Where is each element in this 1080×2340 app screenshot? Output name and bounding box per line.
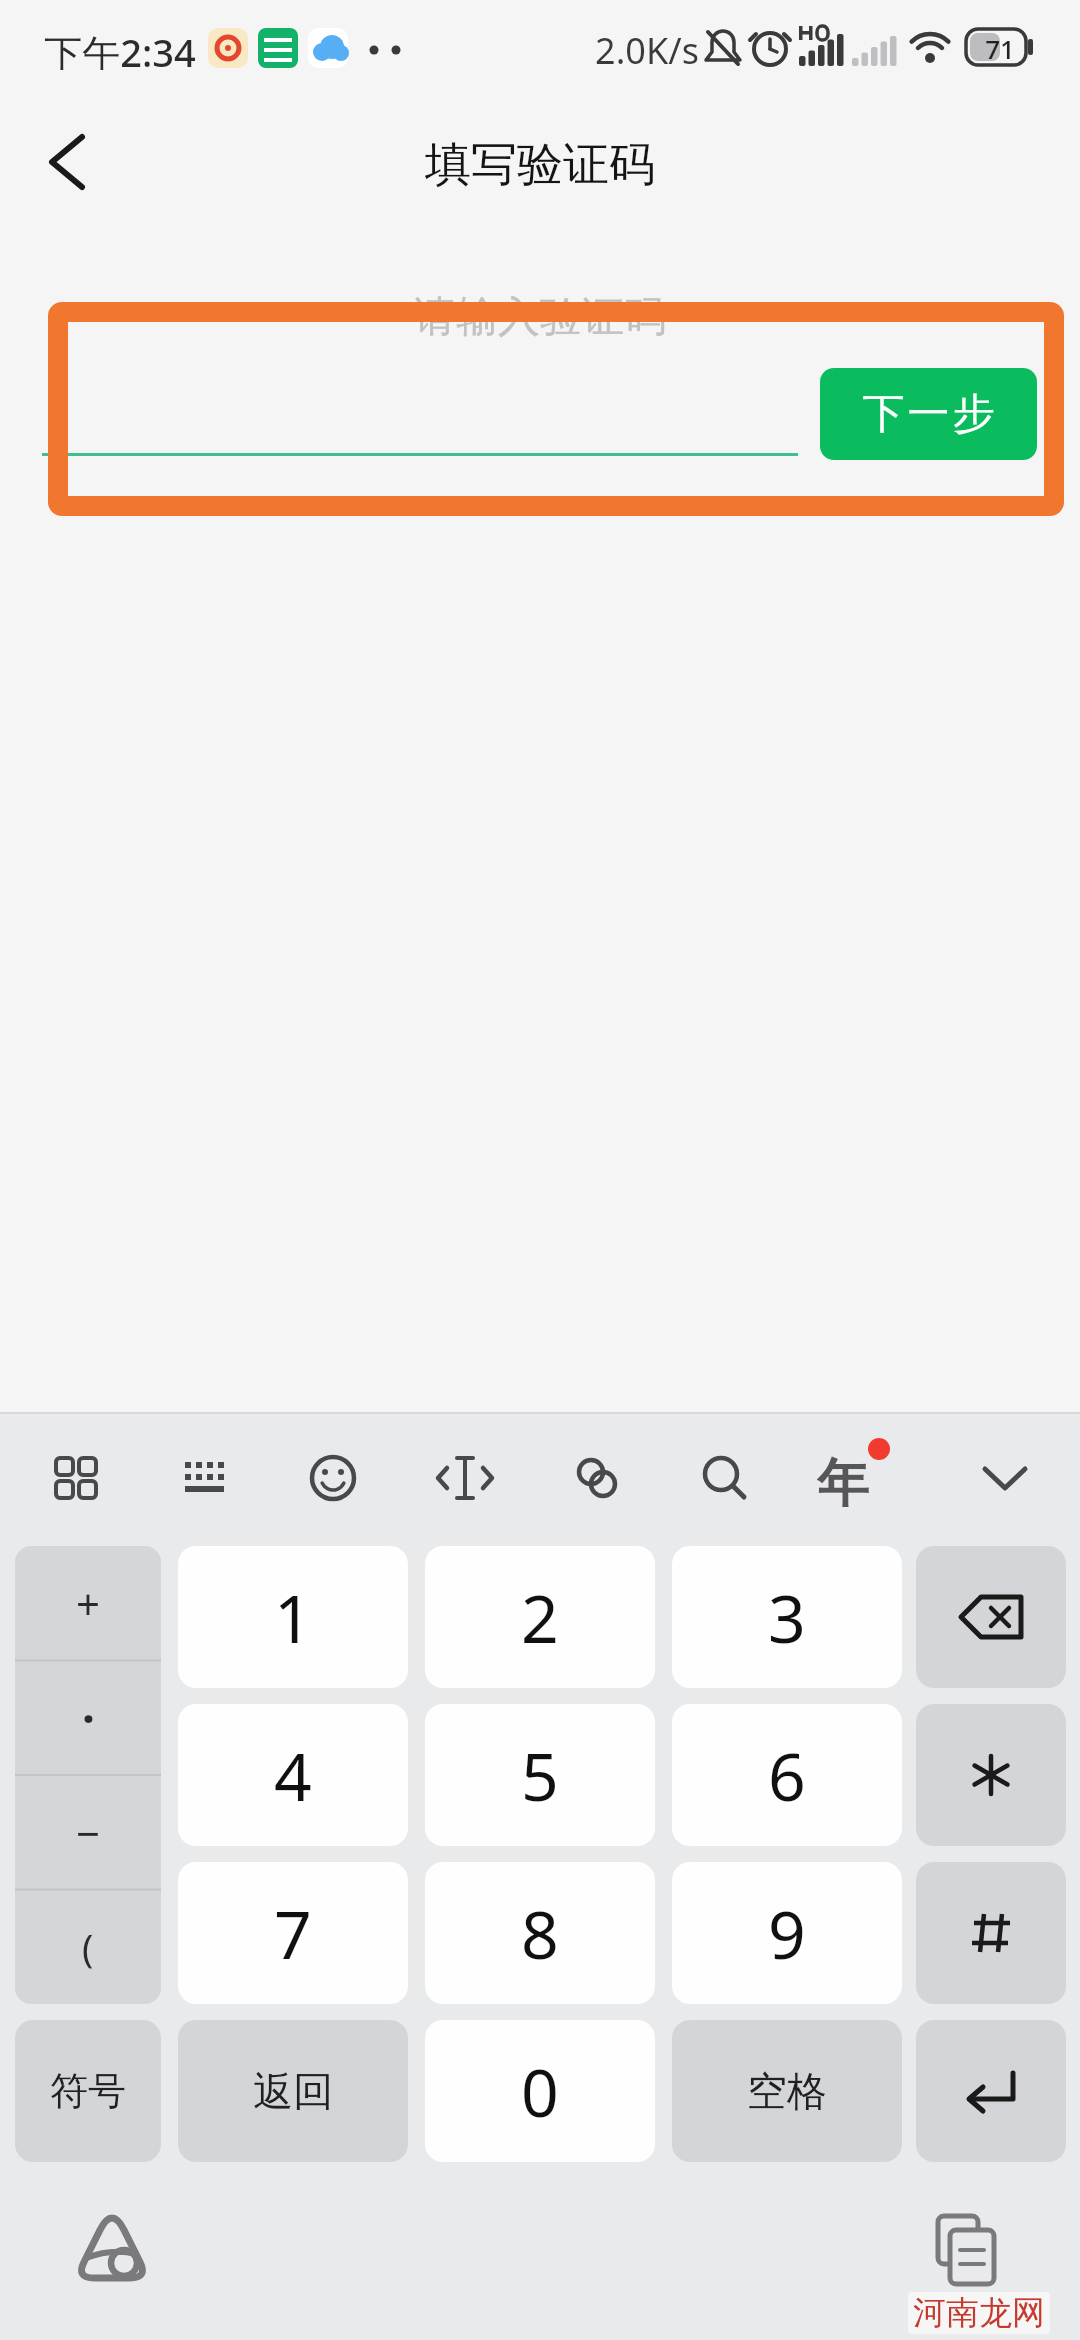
staticText: 2.0K/s xyxy=(595,26,699,70)
staticText: 7 xyxy=(274,1888,312,1978)
button[interactable]: 空格 xyxy=(672,2020,902,2162)
staticText: 空格 xyxy=(747,2066,827,2116)
button[interactable]: 7 xyxy=(178,1862,408,2004)
staticText: − xyxy=(76,1804,101,1861)
button[interactable] xyxy=(916,2020,1066,2162)
staticText: 年 xyxy=(817,1451,869,1507)
staticText: 2 xyxy=(521,1572,559,1662)
staticText: ( xyxy=(82,1921,94,1973)
button[interactable] xyxy=(916,1862,1066,2004)
staticText: 71 xyxy=(985,31,1015,63)
staticText: 请输入验证码 xyxy=(414,291,666,343)
button[interactable]: 2 xyxy=(425,1546,655,1688)
button[interactable] xyxy=(916,1546,1066,1688)
staticText: 填写验证码 xyxy=(425,136,655,192)
button[interactable]: 4 xyxy=(178,1704,408,1846)
staticText: 0 xyxy=(521,2046,559,2136)
staticText: 返回 xyxy=(253,2066,333,2116)
staticText: 下一步 xyxy=(861,388,996,441)
button[interactable]: 9 xyxy=(672,1862,902,2004)
button[interactable] xyxy=(15,1546,161,2004)
button[interactable]: 1 xyxy=(178,1546,408,1688)
button[interactable]: 5 xyxy=(425,1704,655,1846)
staticText: 下午2:34 xyxy=(44,26,196,70)
button[interactable]: 6 xyxy=(672,1704,902,1846)
staticText: 符号 xyxy=(50,2067,126,2115)
button[interactable]: 符号 xyxy=(15,2020,161,2162)
button[interactable]: 8 xyxy=(425,1862,655,2004)
staticText: 6 xyxy=(768,1730,806,1820)
button[interactable]: 3 xyxy=(672,1546,902,1688)
staticText: + xyxy=(76,1575,101,1632)
button[interactable]: · xyxy=(15,1661,161,1775)
button[interactable]: − xyxy=(15,1775,161,1889)
staticText: · xyxy=(82,1687,95,1750)
staticText: 河南龙网 xyxy=(913,2292,1045,2334)
staticText: 8 xyxy=(521,1888,559,1978)
staticText: 4 xyxy=(274,1730,312,1820)
staticText: 5 xyxy=(521,1730,559,1820)
button[interactable] xyxy=(916,1704,1066,1846)
button[interactable] xyxy=(30,130,100,200)
button[interactable]: 返回 xyxy=(178,2020,408,2162)
staticText: 1 xyxy=(274,1572,312,1662)
staticText: 3 xyxy=(768,1572,806,1662)
button[interactable]: 下一步 xyxy=(820,368,1037,460)
button[interactable]: 0 xyxy=(425,2020,655,2162)
staticText: 9 xyxy=(768,1888,806,1978)
button[interactable]: + xyxy=(15,1546,161,1661)
button[interactable]: ( xyxy=(15,1889,161,2004)
